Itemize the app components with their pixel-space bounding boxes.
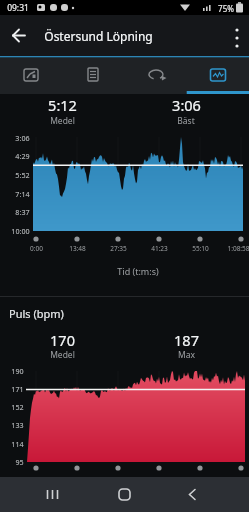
- staticText: 41:23: [151, 244, 168, 253]
- staticText: 5:52: [15, 170, 30, 180]
- staticText: Östersund Löpning: [44, 28, 153, 44]
- button[interactable]: 3:06: [141, 90, 231, 119]
- staticText: 190: [11, 366, 24, 376]
- button[interactable]: 5:12: [17, 90, 107, 119]
- staticText: 170: [50, 330, 75, 350]
- staticText: Tid (t:m:s): [117, 265, 159, 277]
- staticText: 1:08:58: [227, 244, 249, 253]
- staticText: 8:37: [15, 207, 30, 217]
- staticText: 133: [11, 420, 24, 430]
- staticText: 171: [11, 384, 24, 394]
- staticText: 187: [174, 330, 199, 350]
- staticText: 114: [11, 439, 24, 449]
- button[interactable]: [90, 479, 154, 511]
- staticText: 09:31: [7, 2, 29, 14]
- button[interactable]: [187, 58, 249, 94]
- staticText: 95: [15, 457, 24, 467]
- staticText: Puls (bpm): [9, 306, 64, 321]
- button[interactable]: [62, 58, 124, 94]
- staticText: 4:29: [15, 151, 30, 161]
- button[interactable]: [20, 479, 84, 511]
- button[interactable]: [0, 15, 249, 56]
- staticText: Bäst: [177, 115, 195, 127]
- button[interactable]: [160, 479, 224, 511]
- button[interactable]: [0, 58, 62, 94]
- staticText: 7:14: [15, 189, 30, 199]
- staticText: Medel: [50, 115, 75, 127]
- button[interactable]: 187: [141, 325, 231, 354]
- staticText: 13:48: [69, 244, 86, 253]
- staticText: Medel: [50, 349, 75, 361]
- staticText: 55:10: [192, 244, 209, 253]
- staticText: 5:12: [48, 95, 77, 115]
- staticText: 10:00: [11, 226, 30, 236]
- button[interactable]: 170: [17, 325, 107, 354]
- staticText: Max: [178, 349, 195, 361]
- staticText: 27:35: [110, 244, 127, 253]
- staticText: 75%: [218, 3, 234, 14]
- staticText: 3:06: [172, 95, 201, 115]
- staticText: 0:00: [30, 244, 43, 253]
- staticText: 152: [11, 402, 24, 412]
- staticText: 3:06: [15, 133, 30, 143]
- button[interactable]: [125, 58, 187, 94]
